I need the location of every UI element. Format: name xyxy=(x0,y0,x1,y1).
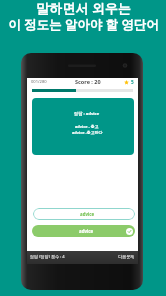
staticText: advice -충고하다 xyxy=(72,130,103,135)
staticText: advice xyxy=(80,211,95,217)
staticText: advice - 충고 xyxy=(75,124,99,129)
button[interactable]: 정답 (정답) 횟수 : 4 xyxy=(30,254,65,260)
staticText: 정답 : advice xyxy=(74,111,100,117)
staticText: advice xyxy=(79,228,94,234)
staticText: 001/280 xyxy=(31,79,47,85)
staticText: 이 정도는 알아야 할 영단어 xyxy=(8,16,159,33)
staticText: 5 xyxy=(131,79,134,86)
staticText: Score : 20 xyxy=(75,78,101,85)
button[interactable]: Favourite xyxy=(124,80,129,85)
button[interactable]: advice xyxy=(32,225,135,237)
button[interactable]: advice xyxy=(33,208,135,220)
button[interactable]: 다음문제 xyxy=(118,254,135,259)
button[interactable]: 정답 : advice xyxy=(32,98,134,155)
staticText: 말하면서 외우는 xyxy=(36,0,131,17)
